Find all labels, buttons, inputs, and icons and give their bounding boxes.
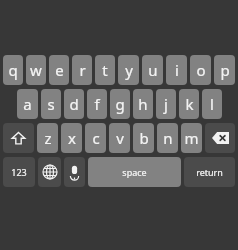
staticText: b bbox=[139, 128, 149, 148]
button[interactable]: 123 bbox=[3, 157, 35, 187]
button[interactable]: i bbox=[166, 55, 187, 85]
button[interactable]: Voice input bbox=[64, 157, 85, 187]
staticText: q bbox=[8, 60, 18, 80]
staticText: z bbox=[44, 128, 52, 148]
button[interactable]: b bbox=[133, 123, 154, 153]
button[interactable]: return bbox=[184, 157, 235, 187]
staticText: g bbox=[115, 94, 125, 114]
staticText: i bbox=[175, 60, 179, 80]
staticText: e bbox=[55, 60, 64, 80]
staticText: a bbox=[23, 94, 32, 114]
staticText: o bbox=[196, 60, 206, 80]
staticText: return bbox=[196, 166, 223, 178]
button[interactable]: v bbox=[109, 123, 130, 153]
staticText: v bbox=[116, 128, 124, 148]
staticText: y bbox=[125, 60, 133, 80]
button[interactable]: h bbox=[133, 89, 153, 119]
button[interactable]: f bbox=[87, 89, 107, 119]
staticText: f bbox=[94, 94, 100, 114]
button[interactable]: r bbox=[72, 55, 92, 85]
staticText: k bbox=[185, 94, 194, 114]
button[interactable]: x bbox=[61, 123, 82, 153]
button[interactable]: w bbox=[26, 55, 46, 85]
staticText: t bbox=[102, 60, 108, 80]
button[interactable]: u bbox=[142, 55, 163, 85]
button[interactable]: k bbox=[179, 89, 199, 119]
button[interactable]: Backspace bbox=[205, 123, 235, 153]
staticText: m bbox=[184, 128, 199, 148]
staticText: 123 bbox=[11, 166, 27, 178]
staticText: c bbox=[92, 128, 100, 148]
staticText: space bbox=[122, 166, 147, 178]
button[interactable]: a bbox=[17, 89, 38, 119]
staticText: u bbox=[148, 60, 158, 80]
staticText: p bbox=[220, 60, 230, 80]
button[interactable]: Change keyboard language bbox=[38, 157, 61, 187]
button[interactable]: c bbox=[85, 123, 106, 153]
button[interactable]: z bbox=[37, 123, 58, 153]
staticText: w bbox=[30, 60, 42, 80]
button[interactable]: m bbox=[181, 123, 202, 153]
staticText: r bbox=[79, 60, 86, 80]
staticText: x bbox=[68, 128, 76, 148]
button[interactable]: q bbox=[3, 55, 23, 85]
staticText: s bbox=[47, 94, 55, 114]
button[interactable]: y bbox=[118, 55, 139, 85]
button[interactable]: e bbox=[49, 55, 69, 85]
staticText: d bbox=[69, 94, 79, 114]
button[interactable]: Shift bbox=[3, 123, 34, 153]
button[interactable]: j bbox=[156, 89, 176, 119]
button[interactable]: g bbox=[110, 89, 130, 119]
button[interactable]: t bbox=[95, 55, 115, 85]
button[interactable]: n bbox=[157, 123, 178, 153]
button[interactable]: s bbox=[41, 89, 61, 119]
staticText: n bbox=[163, 128, 173, 148]
staticText: l bbox=[210, 94, 214, 114]
button[interactable]: space bbox=[88, 157, 181, 187]
button[interactable]: p bbox=[214, 55, 235, 85]
button[interactable]: l bbox=[202, 89, 222, 119]
staticText: j bbox=[164, 94, 168, 114]
button[interactable]: o bbox=[190, 55, 211, 85]
button[interactable]: d bbox=[64, 89, 84, 119]
staticText: h bbox=[138, 94, 148, 114]
